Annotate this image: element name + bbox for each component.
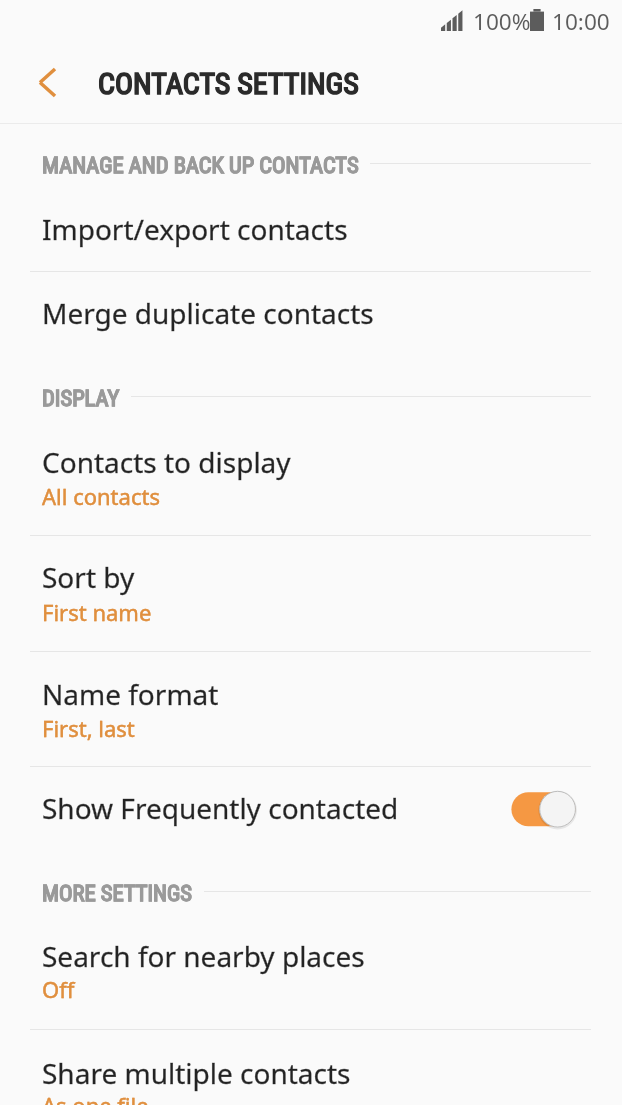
staticText: As one file xyxy=(42,1090,149,1105)
staticText: First name xyxy=(42,597,152,627)
staticText: All contacts xyxy=(42,481,160,511)
staticText: Search for nearby places xyxy=(42,937,365,975)
staticText: Contacts to display xyxy=(42,443,291,481)
staticText: MORE SETTINGS xyxy=(42,880,193,906)
button[interactable]: Share multiple contacts xyxy=(0,1029,622,1105)
staticText: 100% xyxy=(473,6,531,37)
staticText: First, last xyxy=(42,713,135,743)
staticText: Sort by xyxy=(42,558,135,596)
staticText: Share multiple contacts xyxy=(42,1054,351,1092)
staticText: Merge duplicate contacts xyxy=(42,294,374,332)
staticText: First name xyxy=(42,597,152,627)
staticText: CONTACTS SETTINGS xyxy=(98,66,359,101)
staticText: Off xyxy=(42,974,75,1004)
staticText: Search for nearby places xyxy=(42,937,365,975)
button[interactable]: Merge duplicate contacts xyxy=(0,271,622,356)
button[interactable]: Search for nearby places xyxy=(0,914,622,1030)
staticText: MORE SETTINGS xyxy=(42,880,193,906)
staticText: 10:00 xyxy=(552,6,610,37)
staticText: All contacts xyxy=(42,481,160,511)
staticText: CONTACTS SETTINGS xyxy=(98,66,359,101)
staticText: Contacts to display xyxy=(42,443,291,481)
staticText: Show Frequently contacted xyxy=(42,789,399,827)
staticText: MANAGE AND BACK UP CONTACTS xyxy=(42,152,359,178)
staticText: Import/export contacts xyxy=(42,210,348,248)
staticText: Off xyxy=(42,974,75,1004)
staticText: Merge duplicate contacts xyxy=(42,294,374,332)
button[interactable]: Sort by xyxy=(0,535,622,651)
staticText: Sort by xyxy=(42,558,135,596)
staticText: First, last xyxy=(42,713,135,743)
staticText: DISPLAY xyxy=(42,385,120,411)
staticText: Show Frequently contacted xyxy=(42,789,399,827)
staticText: Name format xyxy=(42,675,219,713)
staticText: Name format xyxy=(42,675,219,713)
staticText: MANAGE AND BACK UP CONTACTS xyxy=(42,152,359,178)
button[interactable]: Name format xyxy=(0,651,622,766)
staticText: Share multiple contacts xyxy=(42,1054,351,1092)
staticText: DISPLAY xyxy=(42,385,120,411)
button[interactable]: Navigate up xyxy=(24,60,70,106)
button[interactable]: Show Frequently contacted toggle, on xyxy=(501,789,587,830)
staticText: As one file xyxy=(42,1090,149,1105)
staticText: Import/export contacts xyxy=(42,210,348,248)
button[interactable]: Show Frequently contacted xyxy=(0,766,622,851)
button[interactable]: Contacts to display xyxy=(0,419,622,535)
button[interactable]: Import/export contacts xyxy=(0,186,622,271)
